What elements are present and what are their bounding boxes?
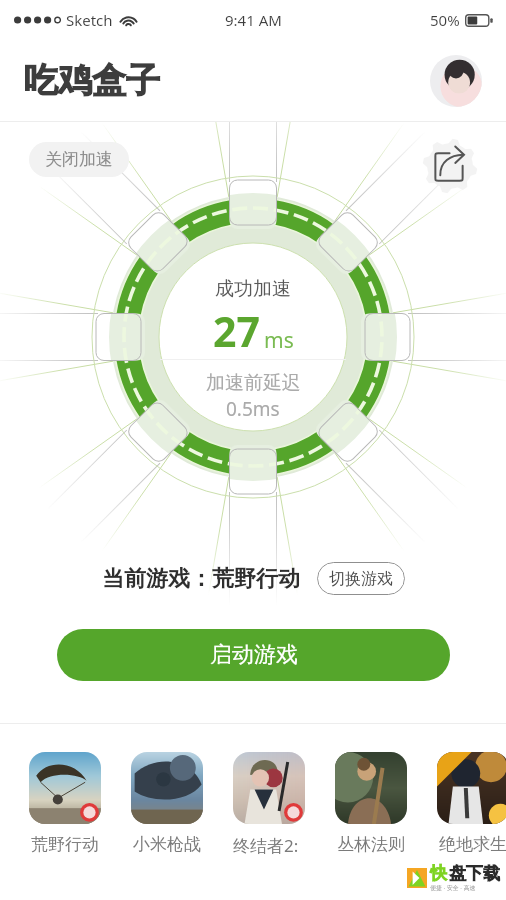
staticText: 27 (213, 303, 260, 359)
button[interactable]: 绝地求生 (437, 752, 506, 855)
staticText: ms (264, 326, 294, 355)
staticText: 便捷 · 安全 · 高速 (430, 884, 476, 892)
staticText: 0.5ms (226, 396, 280, 422)
staticText: 快 (430, 863, 447, 884)
staticText: 当前游戏：荒野行动 (102, 565, 300, 593)
staticText: 绝地求生 (439, 834, 506, 855)
button[interactable]: 终结者2:审... (233, 752, 305, 857)
button[interactable]: 荒野行动 (29, 752, 101, 855)
staticText: 9:41 AM (225, 10, 282, 30)
button[interactable]: 关闭加速 (29, 142, 129, 177)
staticText: 小米枪战 (133, 834, 201, 855)
staticText: 启动游戏 (210, 641, 298, 669)
staticText: 丛林法则 (337, 834, 405, 855)
staticText: 成功加速 (215, 277, 291, 301)
button[interactable]: 小米枪战 (131, 752, 203, 855)
button[interactable]: 切换游戏 (317, 562, 405, 595)
button[interactable]: 启动游戏 (57, 629, 450, 681)
staticText: 关闭加速 (45, 149, 113, 170)
button[interactable]: Profile (430, 55, 482, 107)
staticText: 切换游戏 (329, 569, 393, 589)
staticText: 加速前延迟 (206, 371, 301, 395)
staticText: 吃鸡盒子 (24, 59, 160, 102)
button[interactable]: Share (421, 137, 479, 195)
staticText: 50% (430, 10, 460, 30)
staticText: 盘下载 (449, 863, 500, 884)
staticText: Sketch (66, 10, 113, 30)
button[interactable]: 丛林法则 (335, 752, 407, 855)
staticText: 荒野行动 (31, 834, 99, 855)
staticText: 终结者2:审... (233, 834, 305, 857)
